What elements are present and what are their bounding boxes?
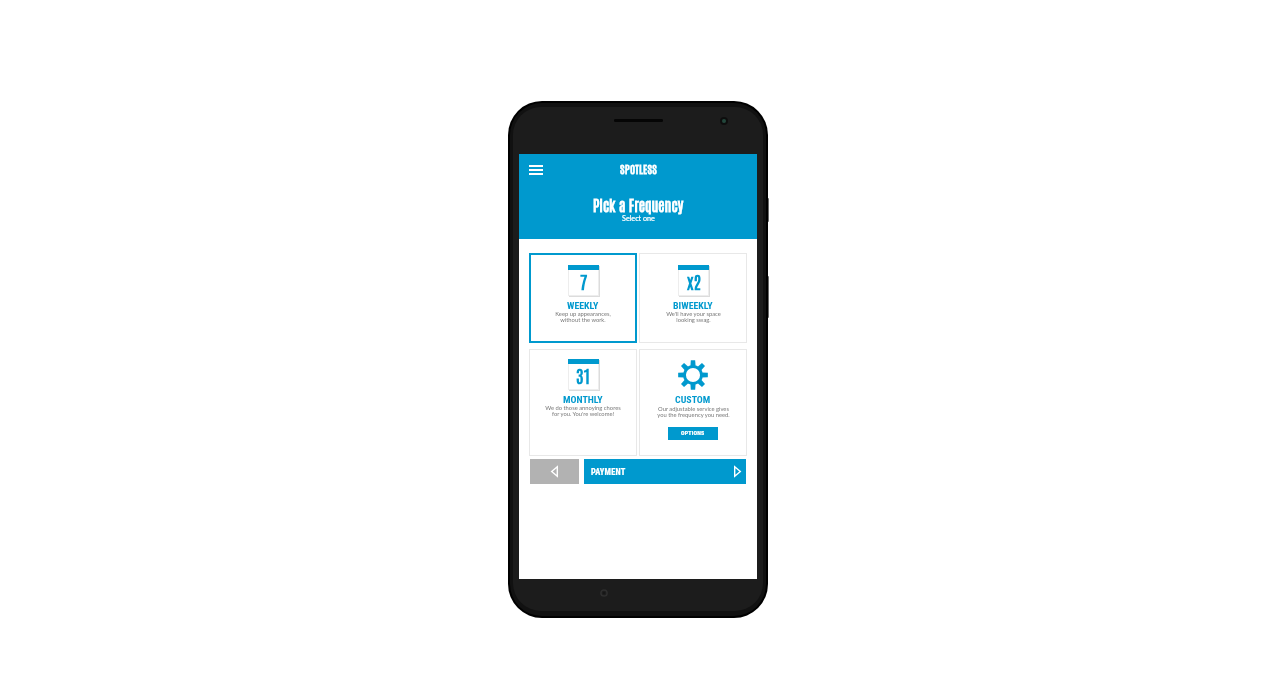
button[interactable]: CUSTOM (639, 349, 747, 456)
staticText: x2 (687, 270, 701, 293)
staticText: Our adjustable service gives you the fre… (657, 405, 730, 418)
button[interactable]: 31 (529, 349, 637, 456)
staticText: 7 (580, 270, 588, 293)
staticText: OPTIONS (681, 430, 705, 437)
staticText: CUSTOM (675, 394, 711, 406)
button[interactable]: Open navigation menu (523, 158, 549, 181)
button[interactable]: Back (530, 459, 579, 484)
button[interactable]: x2 (639, 253, 747, 343)
staticText: WEEKLY (567, 300, 599, 312)
staticText: Pick a Frequency (593, 195, 684, 214)
staticText: Select one (622, 214, 655, 223)
staticText: MONTHLY (563, 394, 603, 406)
staticText: PAYMENT (591, 467, 626, 477)
staticText: We'll have your space looking swag. (666, 310, 721, 323)
button[interactable]: PAYMENT (584, 459, 746, 484)
staticText: BIWEEKLY (673, 300, 713, 312)
staticText: 31 (576, 364, 591, 387)
button[interactable]: OPTIONS (668, 427, 718, 440)
staticText: We do those annoying chores for you. You… (545, 404, 621, 417)
button[interactable]: 7 (529, 253, 637, 343)
staticText: Keep up appearances, without the work. (555, 310, 611, 323)
staticText: SPOTLESS (620, 161, 657, 175)
